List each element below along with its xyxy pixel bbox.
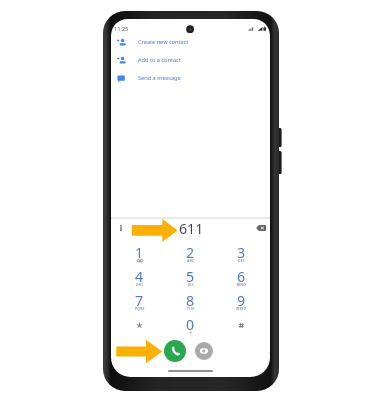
- button[interactable]: 7: [114, 287, 165, 311]
- button[interactable]: Send a message: [111, 69, 270, 87]
- button[interactable]: More options: [116, 222, 126, 234]
- staticText: 9: [237, 291, 246, 310]
- button[interactable]: 4: [114, 263, 165, 287]
- staticText: 2: [186, 243, 195, 262]
- staticText: 6: [237, 267, 246, 286]
- button[interactable]: 8: [165, 287, 216, 311]
- staticText: GHI: [136, 282, 143, 287]
- staticText: 5: [186, 267, 195, 286]
- button[interactable]: Create new contact: [111, 33, 270, 51]
- button[interactable]: Add to a contact: [111, 51, 270, 69]
- staticText: 1: [135, 243, 144, 262]
- button[interactable]: 9: [216, 287, 267, 311]
- staticText: Send a message: [138, 74, 181, 82]
- staticText: Create new contact: [138, 38, 189, 46]
- staticText: PQRS: [135, 306, 145, 311]
- button[interactable]: 2: [165, 239, 216, 263]
- button[interactable]: 5: [165, 263, 216, 287]
- staticText: WXYZ: [236, 306, 247, 311]
- button[interactable]: 1: [114, 239, 165, 263]
- button[interactable]: 3: [216, 239, 267, 263]
- staticText: ABC: [187, 258, 195, 263]
- button[interactable]: [216, 311, 267, 335]
- staticText: DEF: [238, 258, 245, 263]
- staticText: 0: [186, 315, 195, 334]
- staticText: Add to a contact: [138, 56, 181, 64]
- button[interactable]: Backspace: [256, 224, 266, 232]
- staticText: 3: [237, 243, 246, 262]
- staticText: 4: [135, 267, 144, 286]
- button[interactable]: 0: [165, 311, 216, 335]
- button[interactable]: Video call: [195, 342, 213, 360]
- button[interactable]: 6: [216, 263, 267, 287]
- staticText: 611: [179, 219, 204, 238]
- staticText: 11:25: [114, 25, 129, 33]
- staticText: 7: [135, 291, 144, 310]
- staticText: MNO: [237, 282, 247, 287]
- button[interactable]: [114, 311, 165, 335]
- staticText: JKL: [188, 282, 194, 287]
- staticText: TUV: [187, 306, 195, 311]
- button[interactable]: Call: [164, 340, 186, 362]
- staticText: 8: [186, 291, 195, 310]
